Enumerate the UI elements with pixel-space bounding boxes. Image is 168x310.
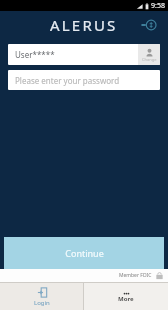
- button[interactable]: User*****: [8, 44, 160, 65]
- staticText: Member FDIC: [119, 272, 152, 279]
- staticText: More: [118, 295, 134, 303]
- staticText: Login: [34, 299, 50, 307]
- button[interactable]: Login: [0, 283, 83, 310]
- staticText: Continue: [65, 247, 104, 259]
- button[interactable]: Change user: [138, 44, 160, 65]
- button[interactable]: Please enter your password: [8, 70, 160, 90]
- staticText: User*****: [15, 49, 55, 60]
- staticText: Change: [142, 57, 157, 62]
- staticText: Please enter your password: [15, 75, 120, 86]
- button[interactable]: Continue: [4, 237, 164, 269]
- button[interactable]: Pay: [138, 14, 160, 36]
- staticText: ALERUS: [50, 15, 118, 35]
- button[interactable]: More: [84, 283, 168, 310]
- staticText: 9:58: [151, 1, 165, 11]
